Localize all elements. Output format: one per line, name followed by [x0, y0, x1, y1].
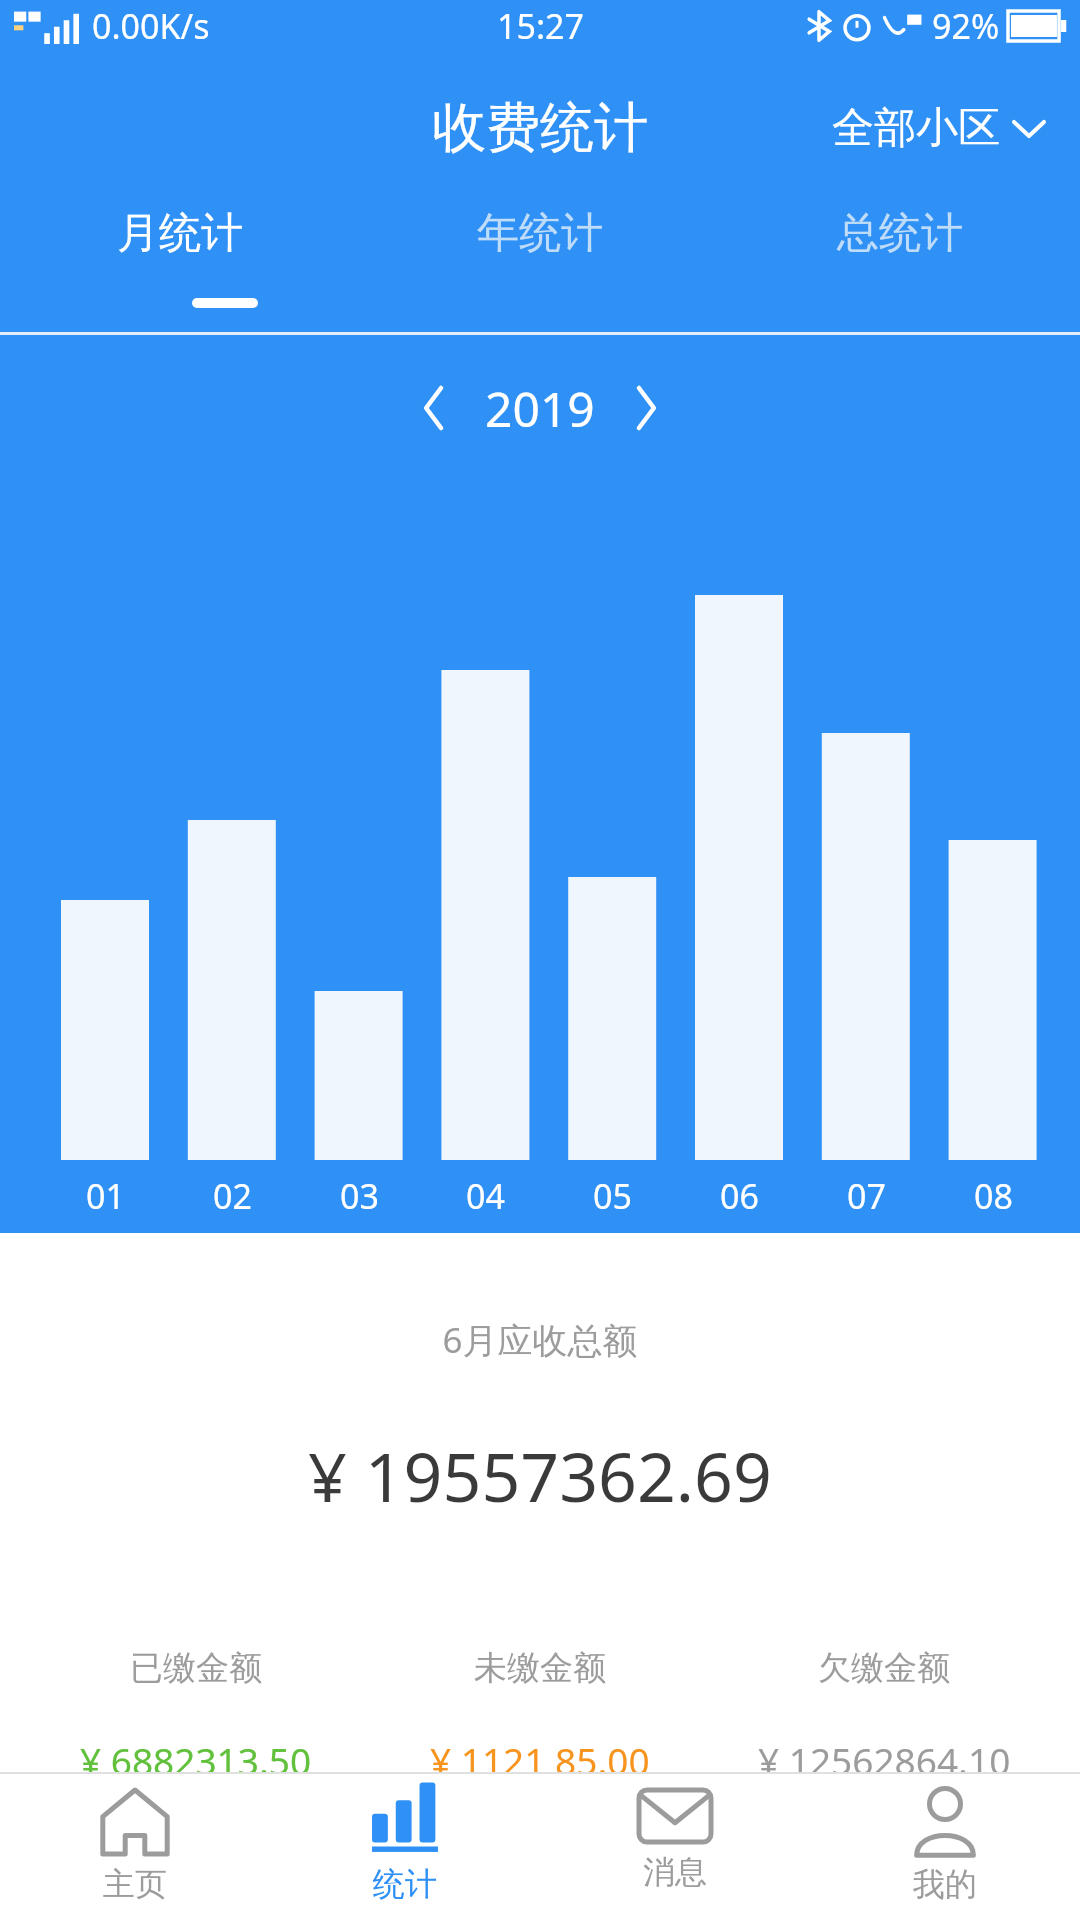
button[interactable]: 月统计 [0, 178, 360, 288]
staticText: 消息 [643, 1852, 707, 1892]
button[interactable]: 我的 [810, 1774, 1080, 1920]
button[interactable]: 年统计 [360, 178, 720, 288]
staticText: 2019 [485, 376, 595, 441]
staticText: 04 [466, 1173, 505, 1219]
staticText: 收费统计 [432, 94, 648, 162]
button[interactable]: 主页 [0, 1774, 270, 1920]
staticText: 主页 [103, 1864, 167, 1904]
staticText: ¥ 19557362.69 [0, 1429, 1080, 1522]
button[interactable]: 全部小区 [832, 102, 1044, 155]
staticText: 0.00K/s [92, 3, 210, 49]
staticText: 总统计 [837, 207, 963, 260]
button[interactable]: 消息 [540, 1774, 810, 1920]
staticText: 未缴金额 [474, 1647, 606, 1689]
staticText: 6月应收总额 [0, 1316, 1080, 1364]
staticText: ¥ 1121 85.00 [430, 1735, 650, 1785]
button[interactable]: 总统计 [720, 178, 1080, 288]
staticText: 06 [720, 1173, 759, 1219]
staticText: 05 [593, 1173, 632, 1219]
staticText: 我的 [913, 1864, 977, 1904]
staticText: 欠缴金额 [818, 1647, 950, 1689]
button[interactable]: 统计 [270, 1774, 540, 1920]
button[interactable]: Previous year [399, 360, 469, 456]
staticText: ¥ 6882313.50 [80, 1735, 312, 1785]
button[interactable]: 欠缴金额 [712, 1647, 1056, 1785]
button[interactable]: 未缴金额 [368, 1647, 712, 1785]
staticText: 月统计 [117, 207, 243, 260]
button[interactable]: Next year [611, 360, 681, 456]
staticText: 全部小区 [832, 102, 1000, 155]
staticText: 08 [974, 1173, 1013, 1219]
staticText: 07 [847, 1173, 886, 1219]
staticText: 已缴金额 [130, 1647, 262, 1689]
staticText: 年统计 [477, 207, 603, 260]
button[interactable]: 已缴金额 [24, 1647, 368, 1785]
staticText: 15:27 [497, 3, 584, 49]
staticText: 92% [932, 3, 1000, 49]
staticText: 统计 [373, 1864, 437, 1904]
staticText: 01 [86, 1173, 125, 1219]
staticText: 03 [340, 1173, 379, 1219]
staticText: 02 [213, 1173, 252, 1219]
staticText: ¥ 12562864.10 [758, 1735, 1011, 1785]
